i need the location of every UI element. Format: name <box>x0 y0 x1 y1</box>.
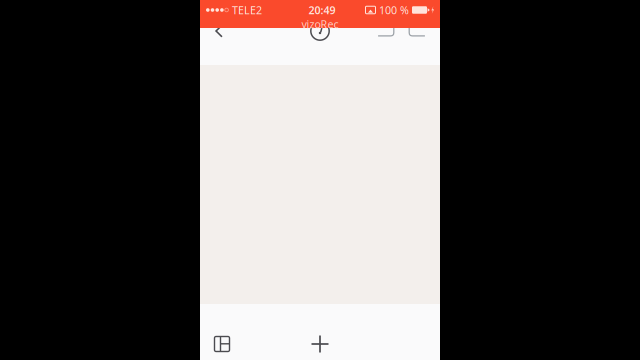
button[interactable]: Record <box>308 21 332 41</box>
button[interactable]: Frame <box>406 21 428 41</box>
staticText: 100 % <box>379 3 409 17</box>
button[interactable]: Layout <box>206 330 238 358</box>
staticText: 20:49 <box>308 3 335 17</box>
button[interactable]: Back <box>207 21 231 41</box>
button[interactable]: Aspect ratio <box>375 21 397 41</box>
staticText: TELE2 <box>232 3 262 17</box>
button[interactable]: Add <box>304 330 336 358</box>
staticText: vizoRec <box>301 17 338 31</box>
